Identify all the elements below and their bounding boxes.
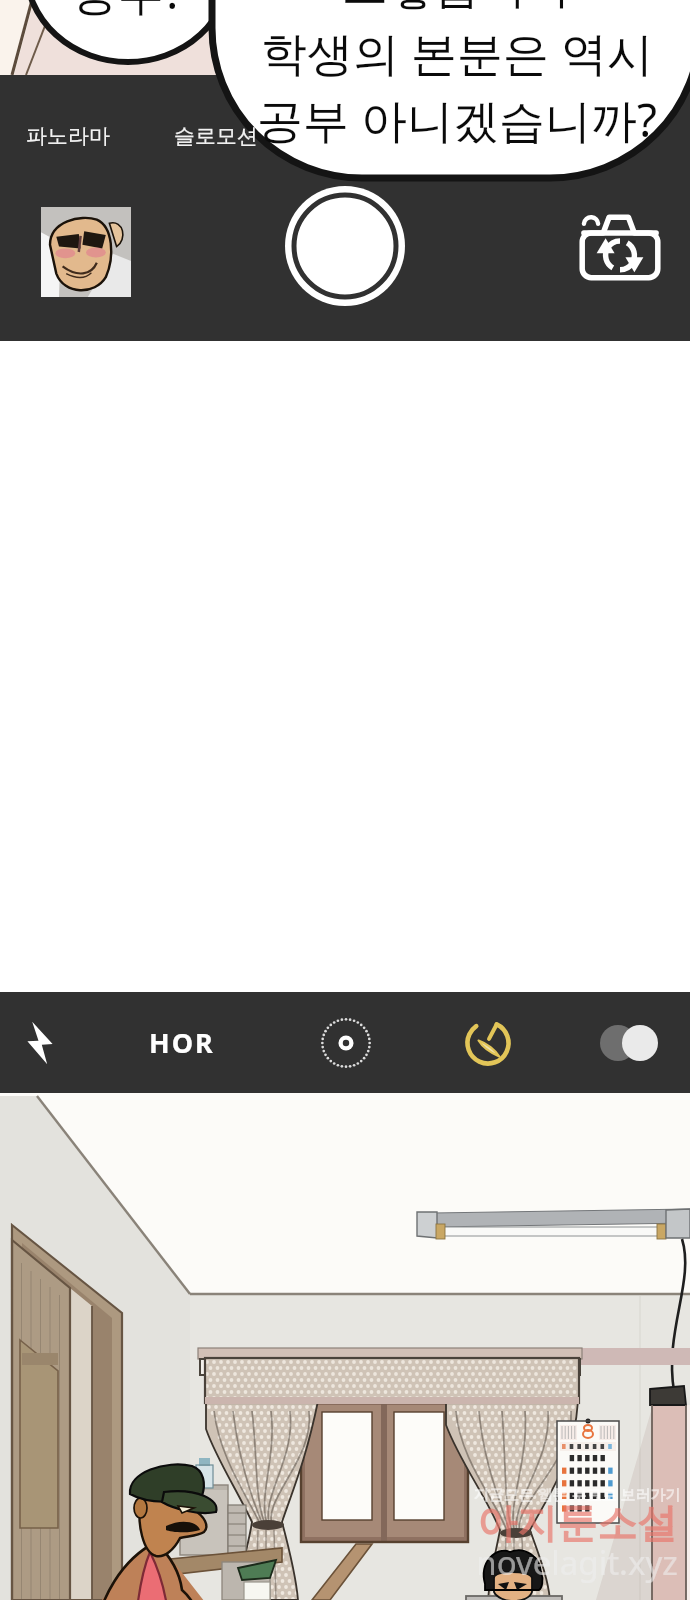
staticText: 파노라마 xyxy=(26,123,110,149)
staticText: 아지툰소설 xyxy=(466,1498,688,1548)
button[interactable]: HOR xyxy=(80,992,284,1093)
staticText: novelagit.xyz xyxy=(466,1540,688,1585)
button[interactable]: Flash xyxy=(0,992,80,1093)
staticText: 공부? xyxy=(50,0,206,23)
staticText: 슬로모션 xyxy=(174,123,258,149)
staticText: 그렇습니다 학생의 본분은 역시 공부 아니겠습니까? xyxy=(226,0,688,151)
button[interactable]: Toggle mode xyxy=(568,992,690,1093)
staticText: 지금모든 웹툰 무료로 보러가기 xyxy=(462,1484,690,1504)
button[interactable]: Timer xyxy=(408,992,568,1093)
button[interactable]: Shutter xyxy=(285,186,405,306)
button[interactable]: 슬로모션 xyxy=(174,123,258,149)
button[interactable]: Switch camera xyxy=(578,210,662,282)
button[interactable]: Focus xyxy=(284,992,408,1093)
staticText: HOR xyxy=(149,1024,215,1061)
button[interactable]: 파노라마 xyxy=(26,123,110,149)
button[interactable]: Gallery xyxy=(41,207,131,297)
